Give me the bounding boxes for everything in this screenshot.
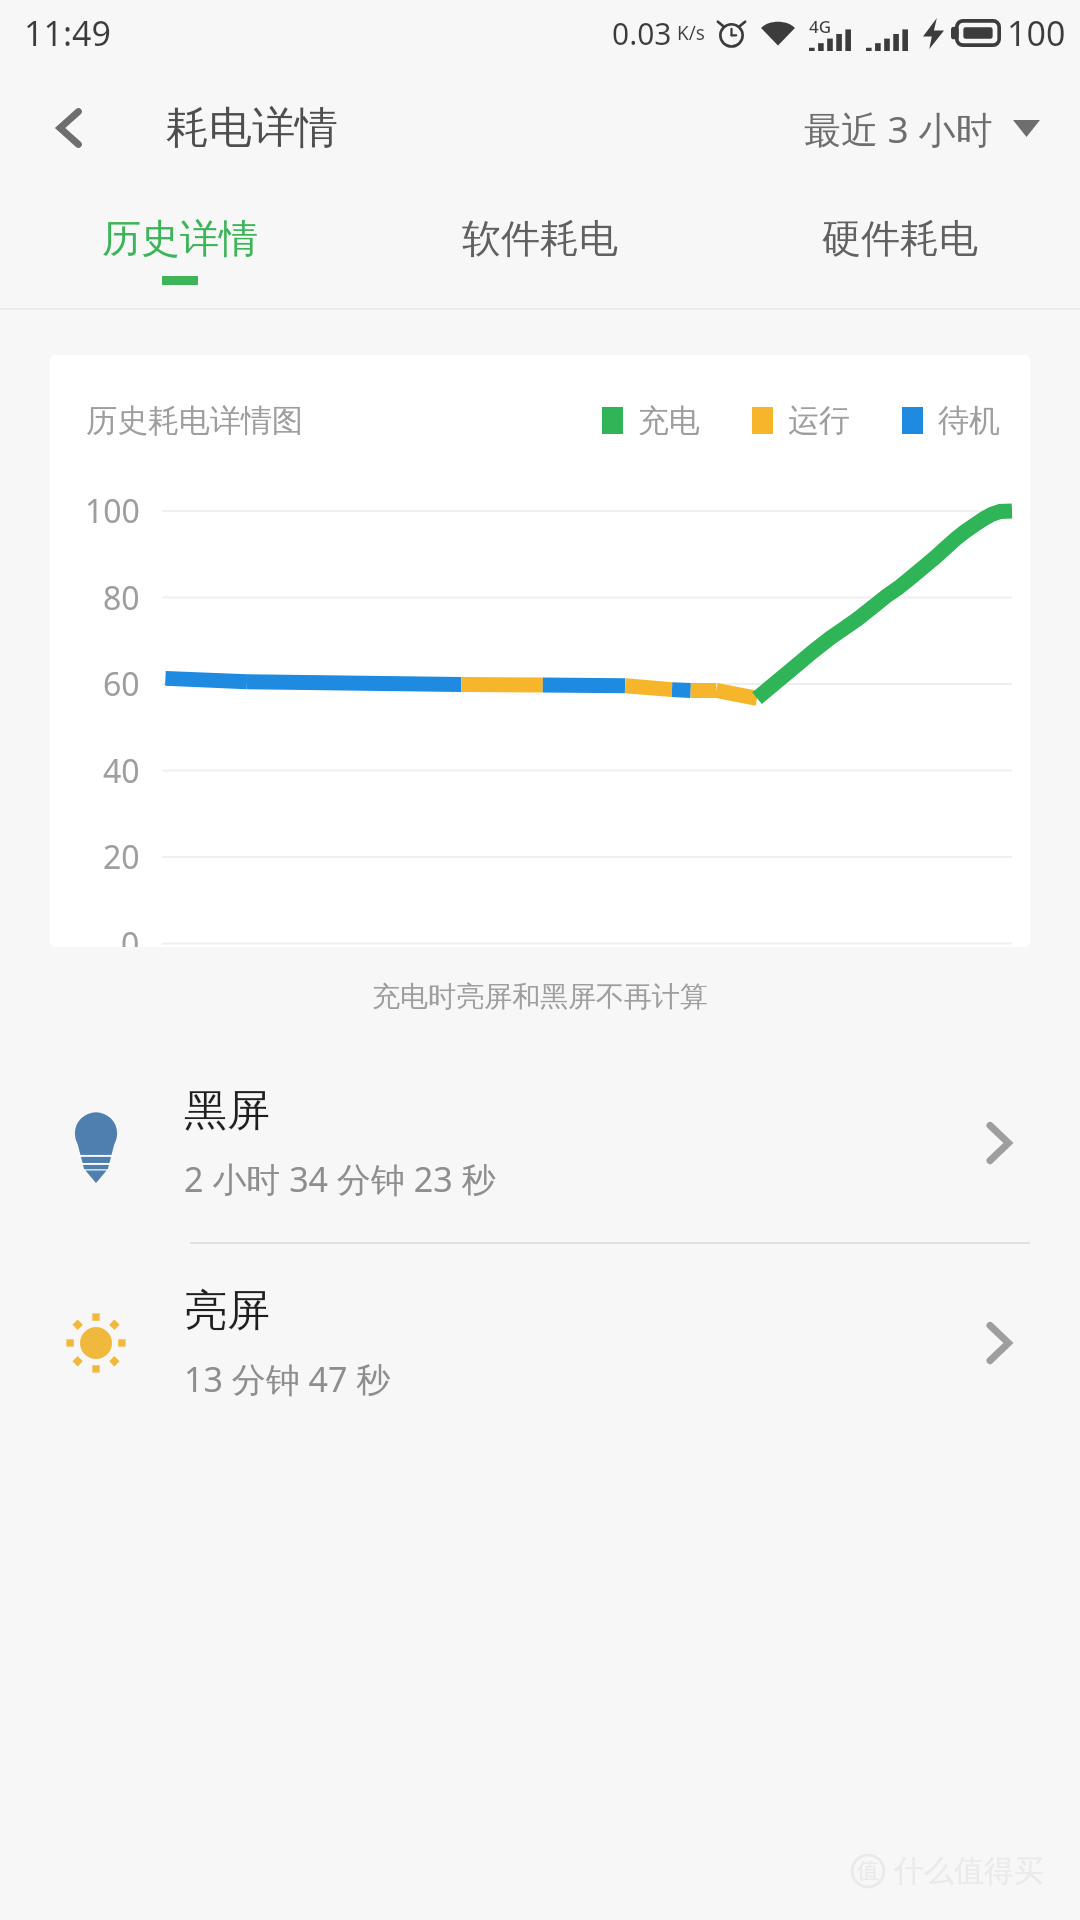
staticText: 充电	[638, 401, 700, 440]
staticText: 13 分钟 47 秒	[184, 1356, 391, 1402]
staticText: 耗电详情	[166, 101, 338, 155]
staticText: K/s	[677, 20, 705, 46]
staticText: 运行	[788, 401, 850, 440]
staticText: 100	[85, 489, 140, 533]
staticText: 0	[121, 922, 140, 947]
staticText: 历史详情	[102, 214, 258, 263]
staticText: 待机	[938, 401, 1000, 440]
staticText: 11:49	[24, 10, 111, 56]
staticText: 60	[103, 662, 140, 706]
staticText: 充电时亮屏和黑屏不再计算	[0, 979, 1080, 1014]
other: 亮屏	[958, 1303, 1038, 1383]
staticText: 40	[103, 749, 140, 793]
staticText: 黑屏	[184, 1084, 270, 1138]
staticText: 20	[103, 835, 140, 879]
staticText: 0.03	[612, 13, 672, 54]
staticText: 最近 3 小时	[804, 103, 993, 154]
button[interactable]: 硬件耗电	[720, 190, 1080, 308]
staticText: 80	[103, 576, 140, 620]
button[interactable]: Back	[22, 80, 118, 176]
button[interactable]: 最近 3 小时	[784, 89, 1080, 168]
button[interactable]: 软件耗电	[360, 190, 720, 308]
staticText: 4G	[809, 15, 832, 38]
staticText: 什么值得买	[894, 1852, 1044, 1890]
staticText: 软件耗电	[462, 214, 618, 263]
staticText: 2 小时 34 分钟 23 秒	[184, 1156, 496, 1202]
other: 黑屏	[958, 1103, 1038, 1183]
staticText: 亮屏	[184, 1284, 270, 1338]
staticText: 值	[857, 1857, 879, 1885]
staticText: 历史耗电详情图	[86, 401, 303, 440]
staticText: 硬件耗电	[822, 214, 978, 263]
button[interactable]: 黑屏	[0, 1044, 1080, 1242]
button[interactable]: 历史详情	[0, 190, 360, 308]
button[interactable]: 亮屏	[0, 1244, 1080, 1442]
staticText: 100	[1007, 10, 1066, 56]
